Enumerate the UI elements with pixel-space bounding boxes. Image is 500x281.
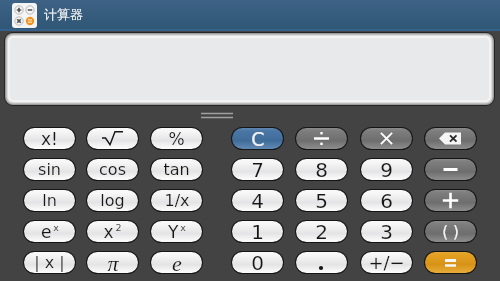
staticText: e x <box>41 222 59 242</box>
button[interactable]: 7 <box>232 159 283 180</box>
staticText: 1/x <box>164 191 190 210</box>
staticText: 6 <box>380 190 393 211</box>
button[interactable]: 2 <box>296 221 347 242</box>
button[interactable]: 0 <box>232 252 283 273</box>
button[interactable]: 1 <box>232 221 283 242</box>
button[interactable]: minus <box>425 159 476 180</box>
button[interactable]: cos <box>87 159 138 180</box>
staticText: 1 <box>251 221 264 242</box>
button[interactable]: 8 <box>296 159 347 180</box>
button[interactable]: e x <box>24 221 75 242</box>
staticText: 9 <box>380 159 393 180</box>
staticText: ln <box>42 191 57 210</box>
button[interactable]: +/− <box>361 252 412 273</box>
staticText: π <box>107 252 119 273</box>
button[interactable]: 1/x <box>151 190 202 211</box>
staticText: 5 <box>315 190 328 211</box>
button[interactable]: 6 <box>361 190 412 211</box>
staticText: 计算器 <box>44 6 83 22</box>
button[interactable]: ln <box>24 190 75 211</box>
button[interactable]: plus <box>425 190 476 211</box>
button[interactable]: tan <box>151 159 202 180</box>
button[interactable]: decimal point <box>296 252 347 273</box>
button[interactable]: sin <box>24 159 75 180</box>
staticText: % <box>168 129 185 149</box>
button[interactable]: divide <box>296 128 347 149</box>
button[interactable]: 9 <box>361 159 412 180</box>
staticText: C <box>251 128 265 149</box>
staticText: log <box>100 191 125 210</box>
staticText: e <box>172 252 182 273</box>
button[interactable]: square root <box>87 128 138 149</box>
button[interactable]: | x | <box>24 252 75 273</box>
staticText: 0 <box>251 252 264 273</box>
staticText: x! <box>41 129 58 149</box>
button[interactable]: e <box>151 252 202 273</box>
button[interactable]: x! <box>24 128 75 149</box>
staticText: 2 <box>315 221 328 242</box>
staticText: +/− <box>368 252 405 273</box>
staticText: 7 <box>251 159 264 180</box>
button[interactable]: Y x <box>151 221 202 242</box>
staticText: 3 <box>380 221 393 242</box>
button[interactable]: 3 <box>361 221 412 242</box>
button[interactable]: ( ) <box>425 221 476 242</box>
staticText: ( ) <box>442 223 459 240</box>
staticText: Y x <box>168 222 186 242</box>
staticText: x 2 <box>103 222 122 242</box>
button[interactable]: π <box>87 252 138 273</box>
button[interactable]: equals <box>425 252 476 273</box>
button[interactable]: multiply <box>361 128 412 149</box>
staticText: | x | <box>34 253 65 272</box>
button[interactable]: 4 <box>232 190 283 211</box>
button[interactable]: % <box>151 128 202 149</box>
staticText: tan <box>163 160 190 179</box>
staticText: 4 <box>251 190 264 211</box>
button[interactable]: x 2 <box>87 221 138 242</box>
staticText: sin <box>38 160 61 179</box>
button[interactable]: backspace <box>425 128 476 149</box>
button[interactable]: 5 <box>296 190 347 211</box>
button[interactable]: log <box>87 190 138 211</box>
staticText: 8 <box>315 159 328 180</box>
button[interactable]: C <box>232 128 283 149</box>
button[interactable]: Calculator <box>12 3 37 28</box>
staticText: cos <box>99 160 126 179</box>
